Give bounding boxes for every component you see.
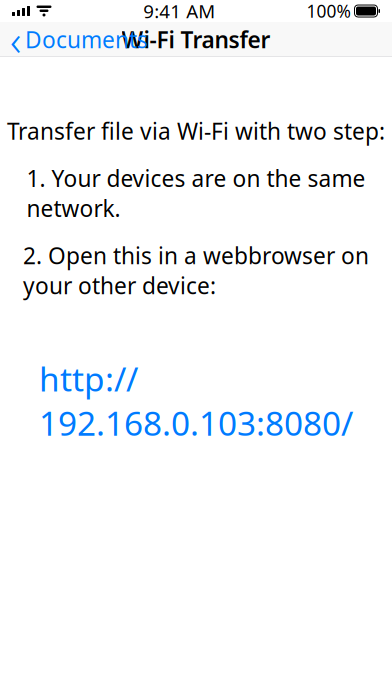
staticText: Wi-Fi Transfer bbox=[121, 24, 270, 54]
button[interactable]: ‹ bbox=[0, 22, 156, 57]
staticText: Transfer file via Wi-Fi with two step: bbox=[7, 116, 385, 146]
staticText: 100% bbox=[306, 0, 350, 22]
staticText: ‹ bbox=[10, 11, 21, 68]
button[interactable]: http://192.168.0.103:8080/ bbox=[27, 352, 365, 449]
staticText: http://192.168.0.103:8080/ bbox=[39, 356, 353, 445]
staticText: 9:41 AM bbox=[143, 0, 215, 23]
staticText: 1. Your devices are on the same network. bbox=[26, 163, 365, 223]
staticText: 2. Open this in a webbrowser on your oth… bbox=[23, 240, 369, 300]
staticText: Documents bbox=[25, 24, 148, 54]
